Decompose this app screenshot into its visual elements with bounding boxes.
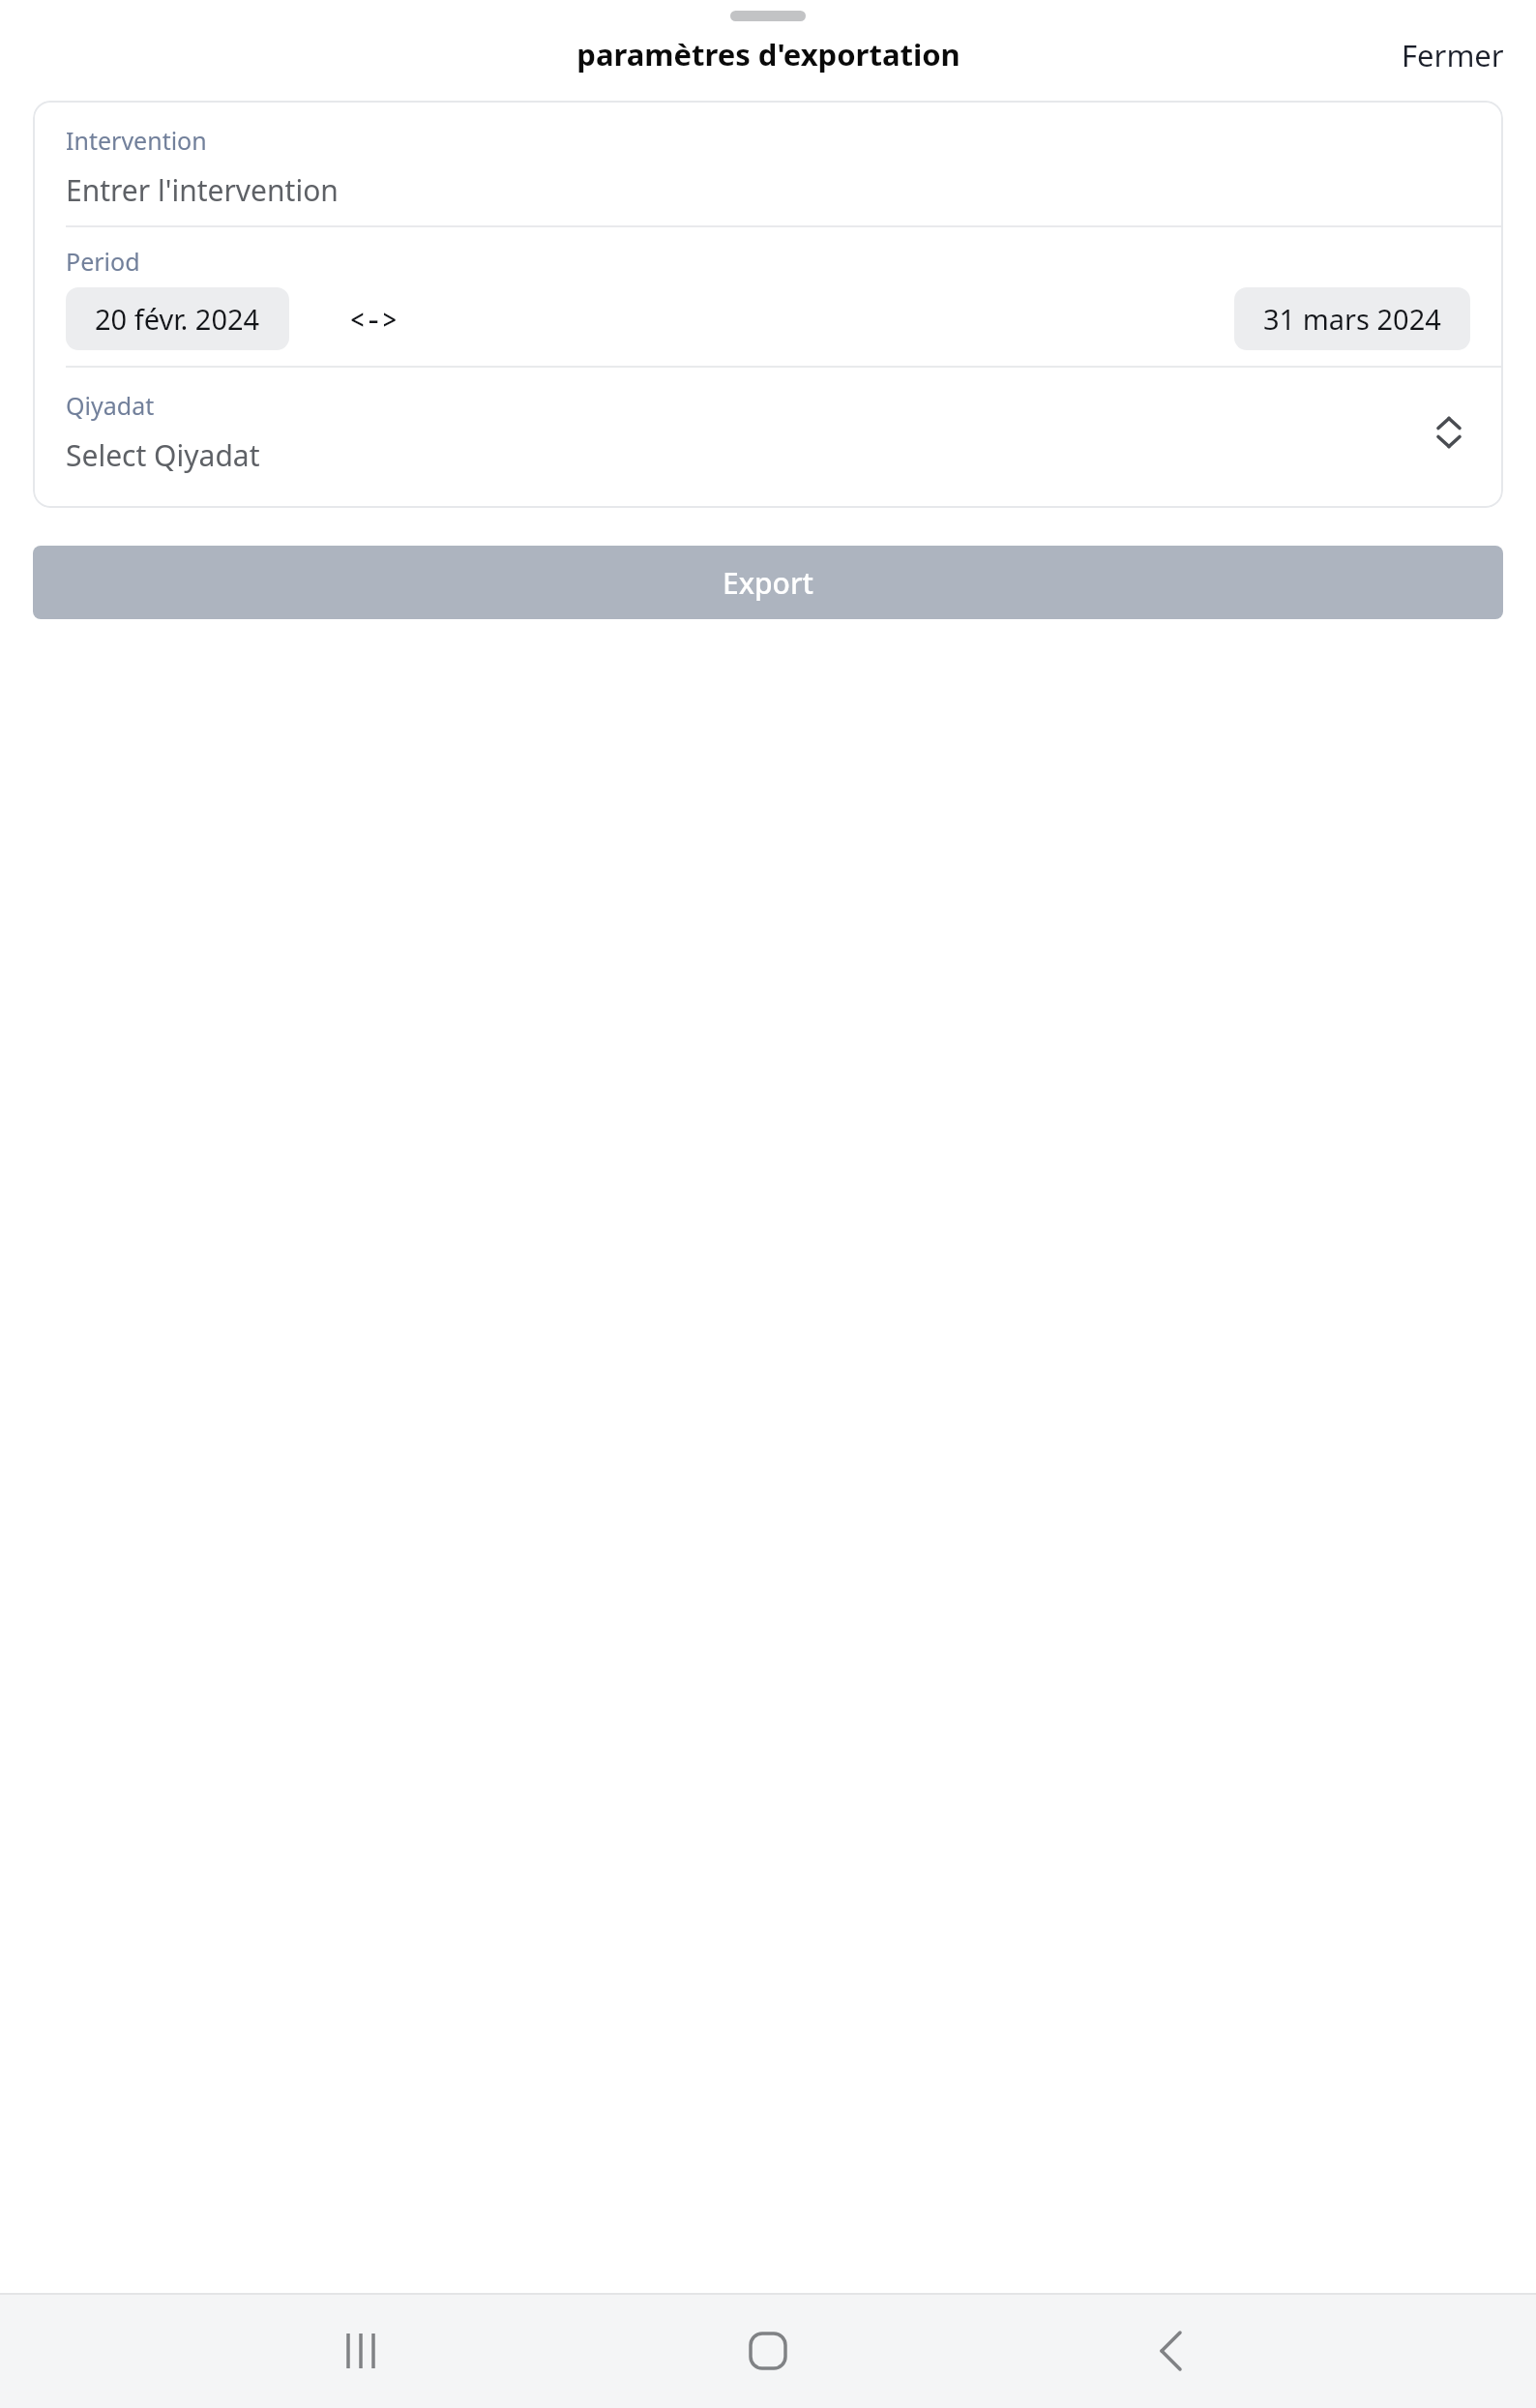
staticText: Qiyadat bbox=[66, 389, 155, 422]
staticText: 31 mars 2024 bbox=[1263, 300, 1441, 338]
button[interactable]: 31 mars 2024 bbox=[1234, 287, 1470, 350]
staticText: Export bbox=[723, 563, 814, 603]
staticText: paramètres d'exportation bbox=[576, 34, 960, 74]
button[interactable]: Qiyadat bbox=[33, 368, 1503, 508]
other: Select Qiyadat bbox=[1428, 411, 1470, 454]
button[interactable]: 20 févr. 2024 bbox=[66, 287, 289, 350]
button[interactable]: Fermer bbox=[1370, 29, 1536, 79]
staticText: Intervention bbox=[66, 124, 207, 157]
staticText: 20 févr. 2024 bbox=[95, 300, 260, 338]
staticText: <-> bbox=[349, 301, 399, 338]
button[interactable]: Recent apps bbox=[314, 2304, 407, 2397]
button[interactable]: Home bbox=[722, 2304, 814, 2397]
staticText: Entrer l'intervention bbox=[66, 170, 339, 210]
staticText: Fermer bbox=[1402, 35, 1504, 74]
button[interactable]: Export bbox=[33, 546, 1503, 619]
staticText: Select Qiyadat bbox=[66, 435, 260, 475]
staticText: Period bbox=[66, 245, 140, 278]
button[interactable]: Back bbox=[1129, 2304, 1222, 2397]
button[interactable]: Intervention bbox=[33, 101, 1503, 225]
